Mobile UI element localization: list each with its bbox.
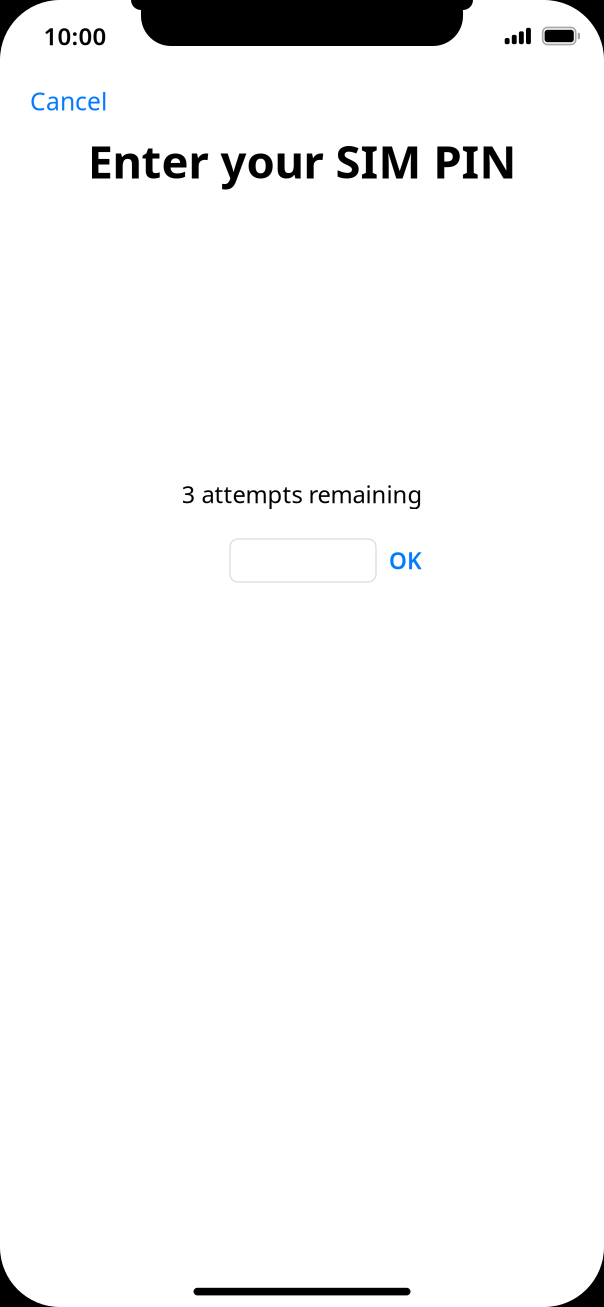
staticText: Enter your SIM PIN: [87, 130, 516, 192]
button[interactable]: SIM PIN: [230, 539, 376, 582]
button[interactable]: OK: [376, 539, 438, 582]
staticText: Cancel: [30, 84, 107, 118]
button[interactable]: Cancel: [0, 88, 123, 114]
staticText: 3 attempts remaining: [181, 478, 422, 510]
staticText: 10:00: [43, 20, 106, 52]
staticText: OK: [389, 545, 422, 576]
